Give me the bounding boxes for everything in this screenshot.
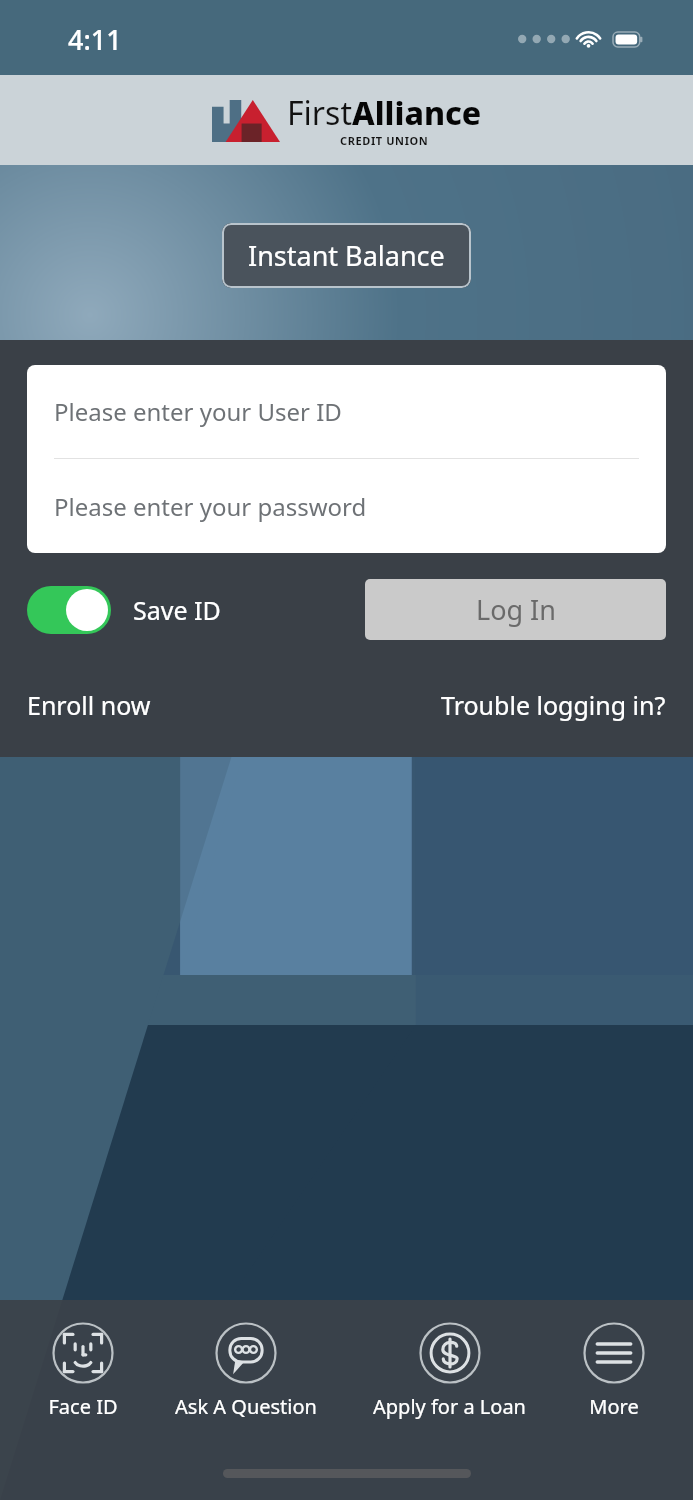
staticText: Face ID: [48, 1393, 118, 1420]
staticText: Alliance: [352, 91, 482, 135]
staticText: First: [287, 91, 352, 135]
button[interactable]: Please enter your User ID: [27, 365, 666, 458]
staticText: Save ID: [133, 593, 221, 627]
staticText: Apply for a Loan: [373, 1393, 526, 1420]
button[interactable]: Face ID: [40, 1322, 126, 1420]
staticText: Please enter your User ID: [54, 395, 342, 428]
button[interactable]: Trouble logging in?: [441, 680, 666, 730]
staticText: Trouble logging in?: [441, 688, 666, 722]
button[interactable]: Save ID: [27, 586, 221, 634]
button[interactable]: Apply for a Loan: [365, 1322, 534, 1420]
button[interactable]: More: [575, 1322, 653, 1420]
staticText: Instant Balance: [248, 237, 445, 274]
staticText: More: [589, 1393, 639, 1420]
button[interactable]: Ask A Question: [167, 1322, 325, 1420]
button[interactable]: Log In: [365, 579, 666, 640]
staticText: 4:11: [68, 21, 122, 58]
button[interactable]: Instant Balance: [222, 223, 471, 288]
staticText: Log In: [476, 591, 556, 628]
staticText: CREDIT UNION: [340, 133, 429, 148]
staticText: Enroll now: [27, 688, 151, 722]
button[interactable]: Please enter your password: [27, 459, 666, 553]
staticText: Ask A Question: [175, 1393, 317, 1420]
staticText: Please enter your password: [54, 490, 367, 523]
button[interactable]: Enroll now: [27, 680, 151, 730]
